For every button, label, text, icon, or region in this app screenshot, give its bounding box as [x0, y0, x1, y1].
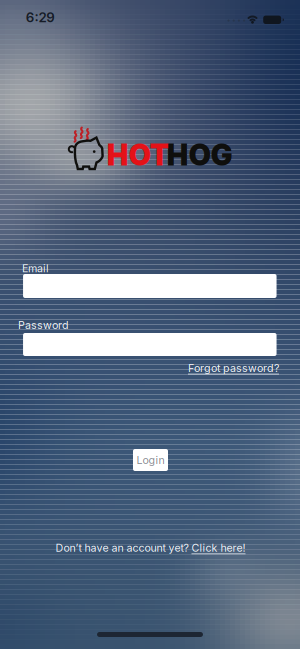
staticText: HOG [167, 137, 233, 173]
button[interactable]: Don’t have an account yet? [55, 541, 245, 554]
button[interactable]: Login [133, 449, 168, 471]
staticText: Password [18, 319, 69, 331]
staticText: HOT [107, 137, 170, 173]
staticText: Click here! [191, 541, 245, 554]
staticText: Don’t have an account yet? [55, 541, 191, 554]
button[interactable]: Forgot password? [188, 362, 279, 374]
staticText: Login [136, 454, 164, 466]
button[interactable] [23, 274, 277, 298]
button[interactable] [23, 333, 277, 356]
staticText: 6:29 [26, 9, 55, 25]
staticText: Forgot password? [188, 362, 279, 374]
staticText: Email [22, 262, 49, 275]
